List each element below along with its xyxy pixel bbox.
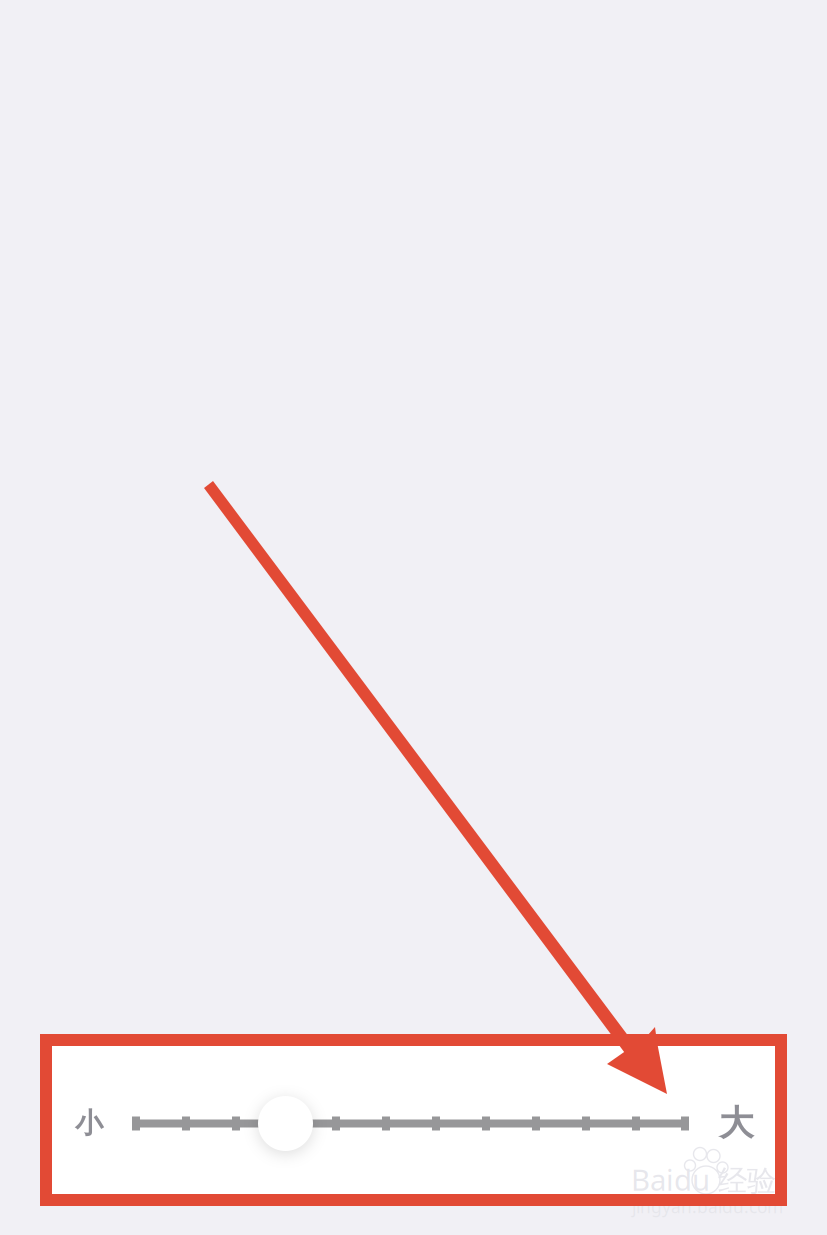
button[interactable]: 大 xyxy=(719,1102,755,1144)
staticText: jingyan.baidu.com xyxy=(632,1195,783,1218)
staticText: 大 xyxy=(719,1102,754,1145)
button[interactable]: 小 xyxy=(75,1106,105,1142)
staticText: Baidu 经验 xyxy=(631,1160,776,1199)
staticText: 小 xyxy=(75,1106,103,1140)
button[interactable]: Text size xyxy=(258,1096,313,1151)
